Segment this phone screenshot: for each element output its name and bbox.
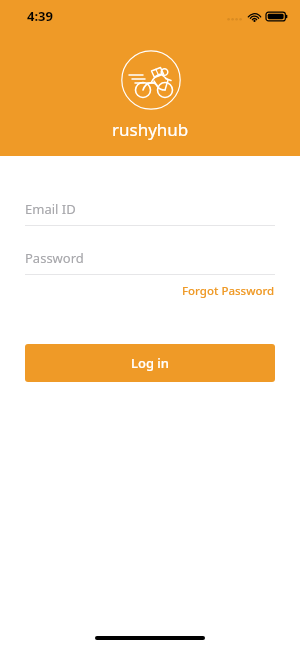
button[interactable]: Password (25, 249, 275, 275)
button[interactable]: Forgot Password (182, 283, 275, 299)
staticText: Password (25, 249, 84, 267)
staticText: Email ID (25, 200, 76, 218)
staticText: Forgot Password (182, 283, 275, 299)
staticText: 4:39 (27, 7, 53, 25)
staticText: Log in (131, 354, 169, 372)
button[interactable]: Email ID (25, 200, 275, 226)
staticText: rushyhub (112, 118, 189, 141)
button[interactable]: Log in (25, 344, 275, 382)
